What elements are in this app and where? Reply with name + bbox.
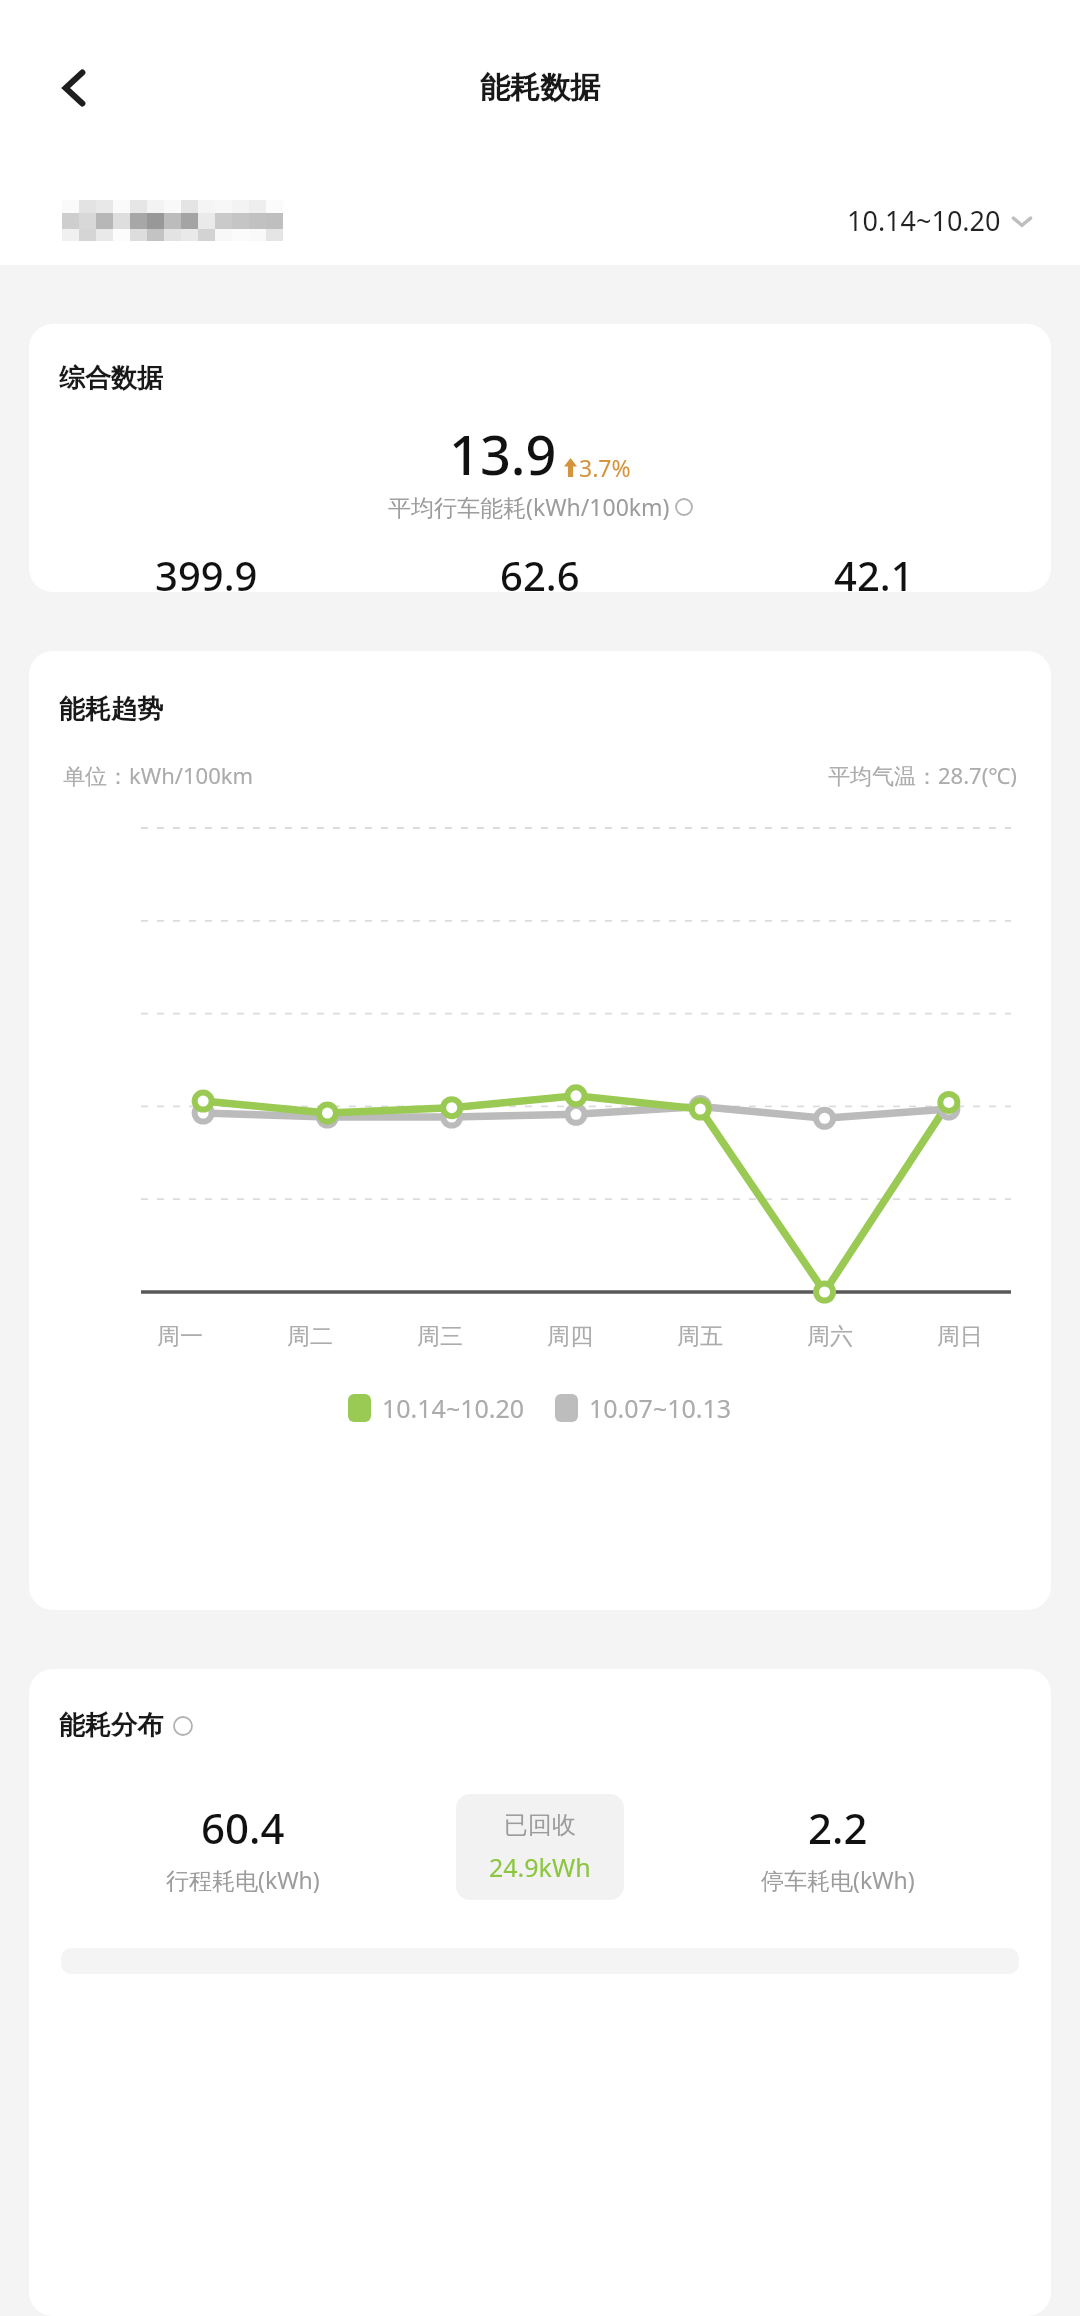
button[interactable]: 10.14~10.20 xyxy=(348,1391,525,1425)
staticText: 周日 xyxy=(937,1322,983,1351)
staticText: 行程耗电(kWh) xyxy=(166,1864,320,1895)
staticText: 周一 xyxy=(157,1322,203,1351)
staticText: 能耗趋势 xyxy=(59,693,163,726)
staticText: 周二 xyxy=(287,1322,333,1351)
staticText: 24.9kWh xyxy=(489,1850,591,1884)
staticText: 10.14~10.20 xyxy=(382,1391,525,1425)
staticText: 60.4 xyxy=(201,1799,285,1856)
staticText: 已回收 xyxy=(504,1810,576,1840)
button[interactable]: 综合数据 xyxy=(29,324,1051,592)
staticText: 周六 xyxy=(807,1322,853,1351)
button[interactable]: 能耗分布 xyxy=(29,1669,1051,2316)
staticText: 停车耗电(kWh) xyxy=(761,1864,915,1895)
staticText: 单位：kWh/100km xyxy=(63,760,254,790)
staticText: 10.07~10.13 xyxy=(589,1391,732,1425)
staticText: 3.7% xyxy=(579,452,631,483)
staticText: 周三 xyxy=(417,1322,463,1351)
staticText: 42.1 xyxy=(834,548,914,592)
staticText: 周四 xyxy=(547,1322,593,1351)
button[interactable]: 能耗趋势 xyxy=(29,651,1051,1610)
staticText: 能耗分布 xyxy=(59,1709,163,1742)
staticText: 2.2 xyxy=(808,1799,868,1856)
staticText: 62.6 xyxy=(500,548,580,592)
staticText: 平均行车能耗(kWh/100km) xyxy=(388,491,670,522)
button[interactable]: Back xyxy=(36,50,112,126)
staticText: 399.9 xyxy=(155,548,258,592)
button[interactable]: 10.14~10.20 xyxy=(839,194,1042,247)
staticText: 13.9 xyxy=(449,417,557,491)
staticText: 周五 xyxy=(677,1322,723,1351)
staticText: 综合数据 xyxy=(59,362,163,395)
staticText: 能耗数据 xyxy=(480,69,600,107)
staticText: 10.14~10.20 xyxy=(847,202,1001,239)
button[interactable]: 10.07~10.13 xyxy=(555,1391,732,1425)
staticText: 平均气温：28.7(℃) xyxy=(828,760,1017,790)
